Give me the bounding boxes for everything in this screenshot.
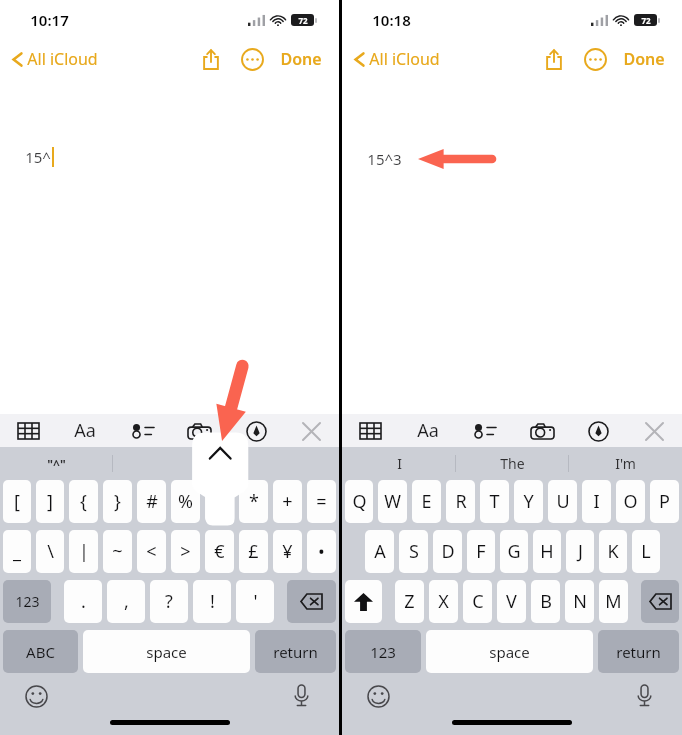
button[interactable]: > [171,530,200,573]
button[interactable]: * [239,480,268,523]
button[interactable]: C [463,580,492,623]
button[interactable]: O [616,480,645,523]
staticText: • [318,539,325,564]
button[interactable]: Backspace [641,580,679,623]
button[interactable]: | [69,530,98,573]
button[interactable]: Emoji [364,682,392,710]
button[interactable]: < [137,530,166,573]
button[interactable]: F [467,530,495,573]
button[interactable]: A [365,530,394,573]
staticText: Q [352,489,367,514]
button[interactable]: W [378,480,407,523]
button[interactable]: ABC [3,630,78,673]
button[interactable]: ] [36,480,64,523]
button[interactable]: £ [239,530,268,573]
button[interactable]: Y [514,480,543,523]
button[interactable]: space [426,630,593,673]
button[interactable]: I'm [569,447,682,480]
button[interactable]: U [548,480,577,523]
button[interactable]: P [650,480,679,523]
button[interactable]: Markup [241,416,271,446]
button[interactable]: . [64,580,102,623]
button[interactable]: = [307,480,336,523]
button[interactable]: I [342,447,456,480]
button[interactable]: } [103,480,132,523]
staticText: \ [47,539,54,564]
button[interactable]: Camera [183,415,215,447]
button[interactable]: T [480,480,509,523]
button[interactable] [226,447,339,480]
button[interactable]: R [446,480,475,523]
button[interactable]: V [497,580,526,623]
button[interactable]: Insert table [355,416,385,446]
button[interactable]: J [566,530,594,573]
button[interactable]: More options [237,44,267,74]
button[interactable] [113,447,226,480]
button[interactable]: ¥ [273,530,302,573]
button[interactable]: return [598,630,679,673]
button[interactable]: Shift [345,580,382,623]
button[interactable]: Z [395,580,424,623]
button[interactable]: More options [580,44,610,74]
button[interactable]: M [599,580,628,623]
button[interactable]: N [565,580,594,623]
button[interactable]: G [500,530,528,573]
button[interactable]: ! [193,580,231,623]
button[interactable]: H [533,530,561,573]
button[interactable]: All iCloud [350,44,443,74]
button[interactable]: Close keyboard [639,416,669,446]
button[interactable]: X [429,580,458,623]
staticText: L [641,539,651,564]
button[interactable]: Text format [411,414,445,447]
button[interactable]: The [456,447,569,480]
staticText: £ [248,539,259,564]
button[interactable]: Share [539,44,569,74]
button[interactable]: Done [276,43,326,75]
button[interactable]: ? [150,580,188,623]
button[interactable]: Dictation [630,681,658,709]
button[interactable]: , [107,580,145,623]
button[interactable]: % [171,480,200,523]
button[interactable]: # [137,480,166,523]
button[interactable]: • [307,530,336,573]
staticText: N [573,589,587,614]
button[interactable]: Checklist [470,416,500,446]
button[interactable]: K [599,530,627,573]
staticText: % [178,489,193,514]
button[interactable]: I [582,480,611,523]
button[interactable]: Share [196,44,226,74]
button[interactable]: Text format [68,414,102,447]
button[interactable]: space [83,630,250,673]
button[interactable]: S [399,530,428,573]
button[interactable]: 123 [345,630,421,673]
button[interactable]: Camera [526,415,558,447]
button[interactable]: Dictation [287,681,315,709]
staticText: "^" [47,456,66,472]
button[interactable]: ' [236,580,274,623]
button[interactable]: L [632,530,660,573]
button[interactable]: Emoji [22,682,50,710]
button[interactable]: "^" [0,447,113,480]
button[interactable]: Checklist [128,416,158,446]
button[interactable]: D [433,530,462,573]
button[interactable]: return [255,630,336,673]
staticText: return [616,642,661,662]
button[interactable]: € [205,530,234,573]
button[interactable]: + [273,480,302,523]
button[interactable]: [ [3,480,31,523]
button[interactable]: Close keyboard [296,416,326,446]
button[interactable]: ~ [103,530,132,573]
button[interactable]: \ [36,530,64,573]
button[interactable]: Backspace [287,580,336,623]
button[interactable]: Done [619,43,669,75]
button[interactable]: Insert table [13,416,43,446]
button[interactable]: B [531,580,560,623]
button[interactable]: Q [345,480,373,523]
button[interactable]: All iCloud [8,44,101,74]
button[interactable]: _ [3,530,31,573]
button[interactable]: { [69,480,98,523]
button[interactable]: Markup [583,416,613,446]
button[interactable]: 123 [3,580,51,623]
button[interactable]: E [412,480,441,523]
